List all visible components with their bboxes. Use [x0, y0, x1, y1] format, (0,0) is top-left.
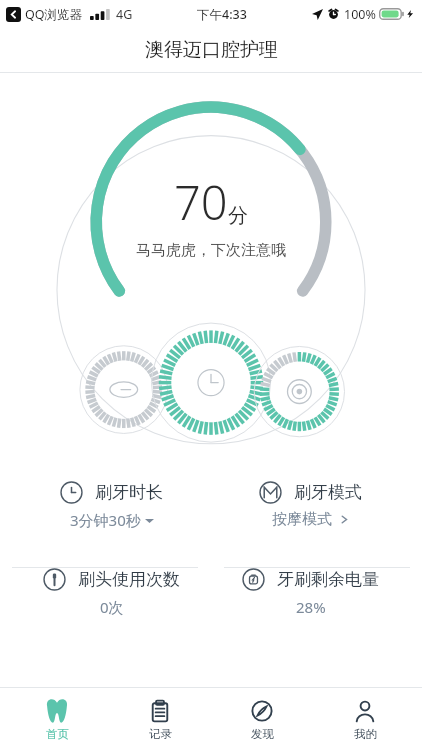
button[interactable]: 牙刷剩余电量 — [211, 568, 410, 617]
staticText: 0次 — [100, 597, 124, 617]
staticText: 3分钟30秒 — [70, 510, 141, 530]
staticText: 刷牙模式 — [294, 482, 362, 503]
button[interactable]: 发现 — [216, 694, 308, 745]
staticText: 马马虎虎，下次注意哦 — [136, 241, 286, 260]
staticText: 100% — [344, 6, 376, 23]
staticText: 下午4:33 — [197, 6, 247, 23]
staticText: 分 — [228, 203, 248, 228]
staticText: QQ浏览器 — [25, 6, 83, 23]
staticText: 刷头使用次数 — [78, 569, 180, 590]
button[interactable]: 刷头使用次数 — [12, 568, 211, 617]
staticText: 70 — [174, 170, 228, 234]
staticText: 刷牙时长 — [95, 482, 163, 503]
button[interactable]: 记录 — [114, 694, 206, 745]
staticText: 我的 — [354, 727, 377, 741]
button[interactable]: 我的 — [319, 694, 411, 745]
staticText: 记录 — [149, 727, 172, 741]
staticText: 28% — [296, 597, 326, 617]
button[interactable]: 刷牙时长 — [12, 481, 211, 530]
staticText: 发现 — [251, 727, 274, 741]
staticText: 牙刷剩余电量 — [277, 569, 379, 590]
button[interactable]: 首页 — [11, 694, 103, 745]
staticText: 首页 — [46, 727, 69, 741]
staticText: 4G — [116, 6, 133, 23]
staticText: 按摩模式 — [272, 510, 332, 529]
staticText: 澳得迈口腔护理 — [145, 38, 278, 62]
button[interactable]: 刷牙模式 — [211, 481, 410, 529]
